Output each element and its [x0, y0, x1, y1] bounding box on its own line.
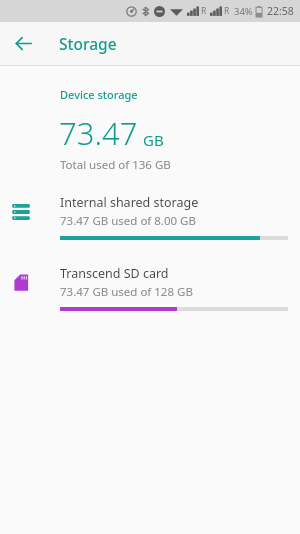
staticText: Device storage	[60, 87, 138, 102]
staticText: Total used of 136 GB	[60, 157, 171, 173]
staticText: R	[224, 5, 230, 17]
other: Transcend SD card	[10, 272, 31, 293]
staticText: R	[201, 5, 207, 17]
staticText: Transcend SD card	[60, 265, 169, 282]
button[interactable]: Back	[11, 31, 36, 56]
button[interactable]: Transcend SD card	[0, 265, 300, 311]
staticText: 73.47	[59, 112, 138, 154]
staticText: 22:58	[267, 4, 294, 18]
staticText: 34%	[234, 5, 253, 18]
button[interactable]: Internal shared storage	[0, 194, 300, 240]
staticText: Storage	[59, 33, 117, 54]
staticText: GB	[143, 130, 164, 150]
other: Internal shared storage	[10, 201, 31, 222]
staticText: 73.47 GB used of 8.00 GB	[60, 213, 196, 229]
staticText: Internal shared storage	[60, 194, 199, 211]
staticText: 73.47 GB used of 128 GB	[60, 284, 193, 300]
